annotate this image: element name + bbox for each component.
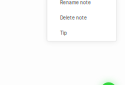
button[interactable]: Delete note: [47, 10, 116, 25]
staticText: Delete note: [60, 15, 87, 21]
button[interactable]: Rename note: [47, 0, 116, 10]
button[interactable]: Tip: [47, 25, 116, 41]
staticText: Rename note: [60, 0, 91, 5]
staticText: Tip: [60, 30, 67, 36]
button[interactable]: New note: [101, 82, 117, 85]
